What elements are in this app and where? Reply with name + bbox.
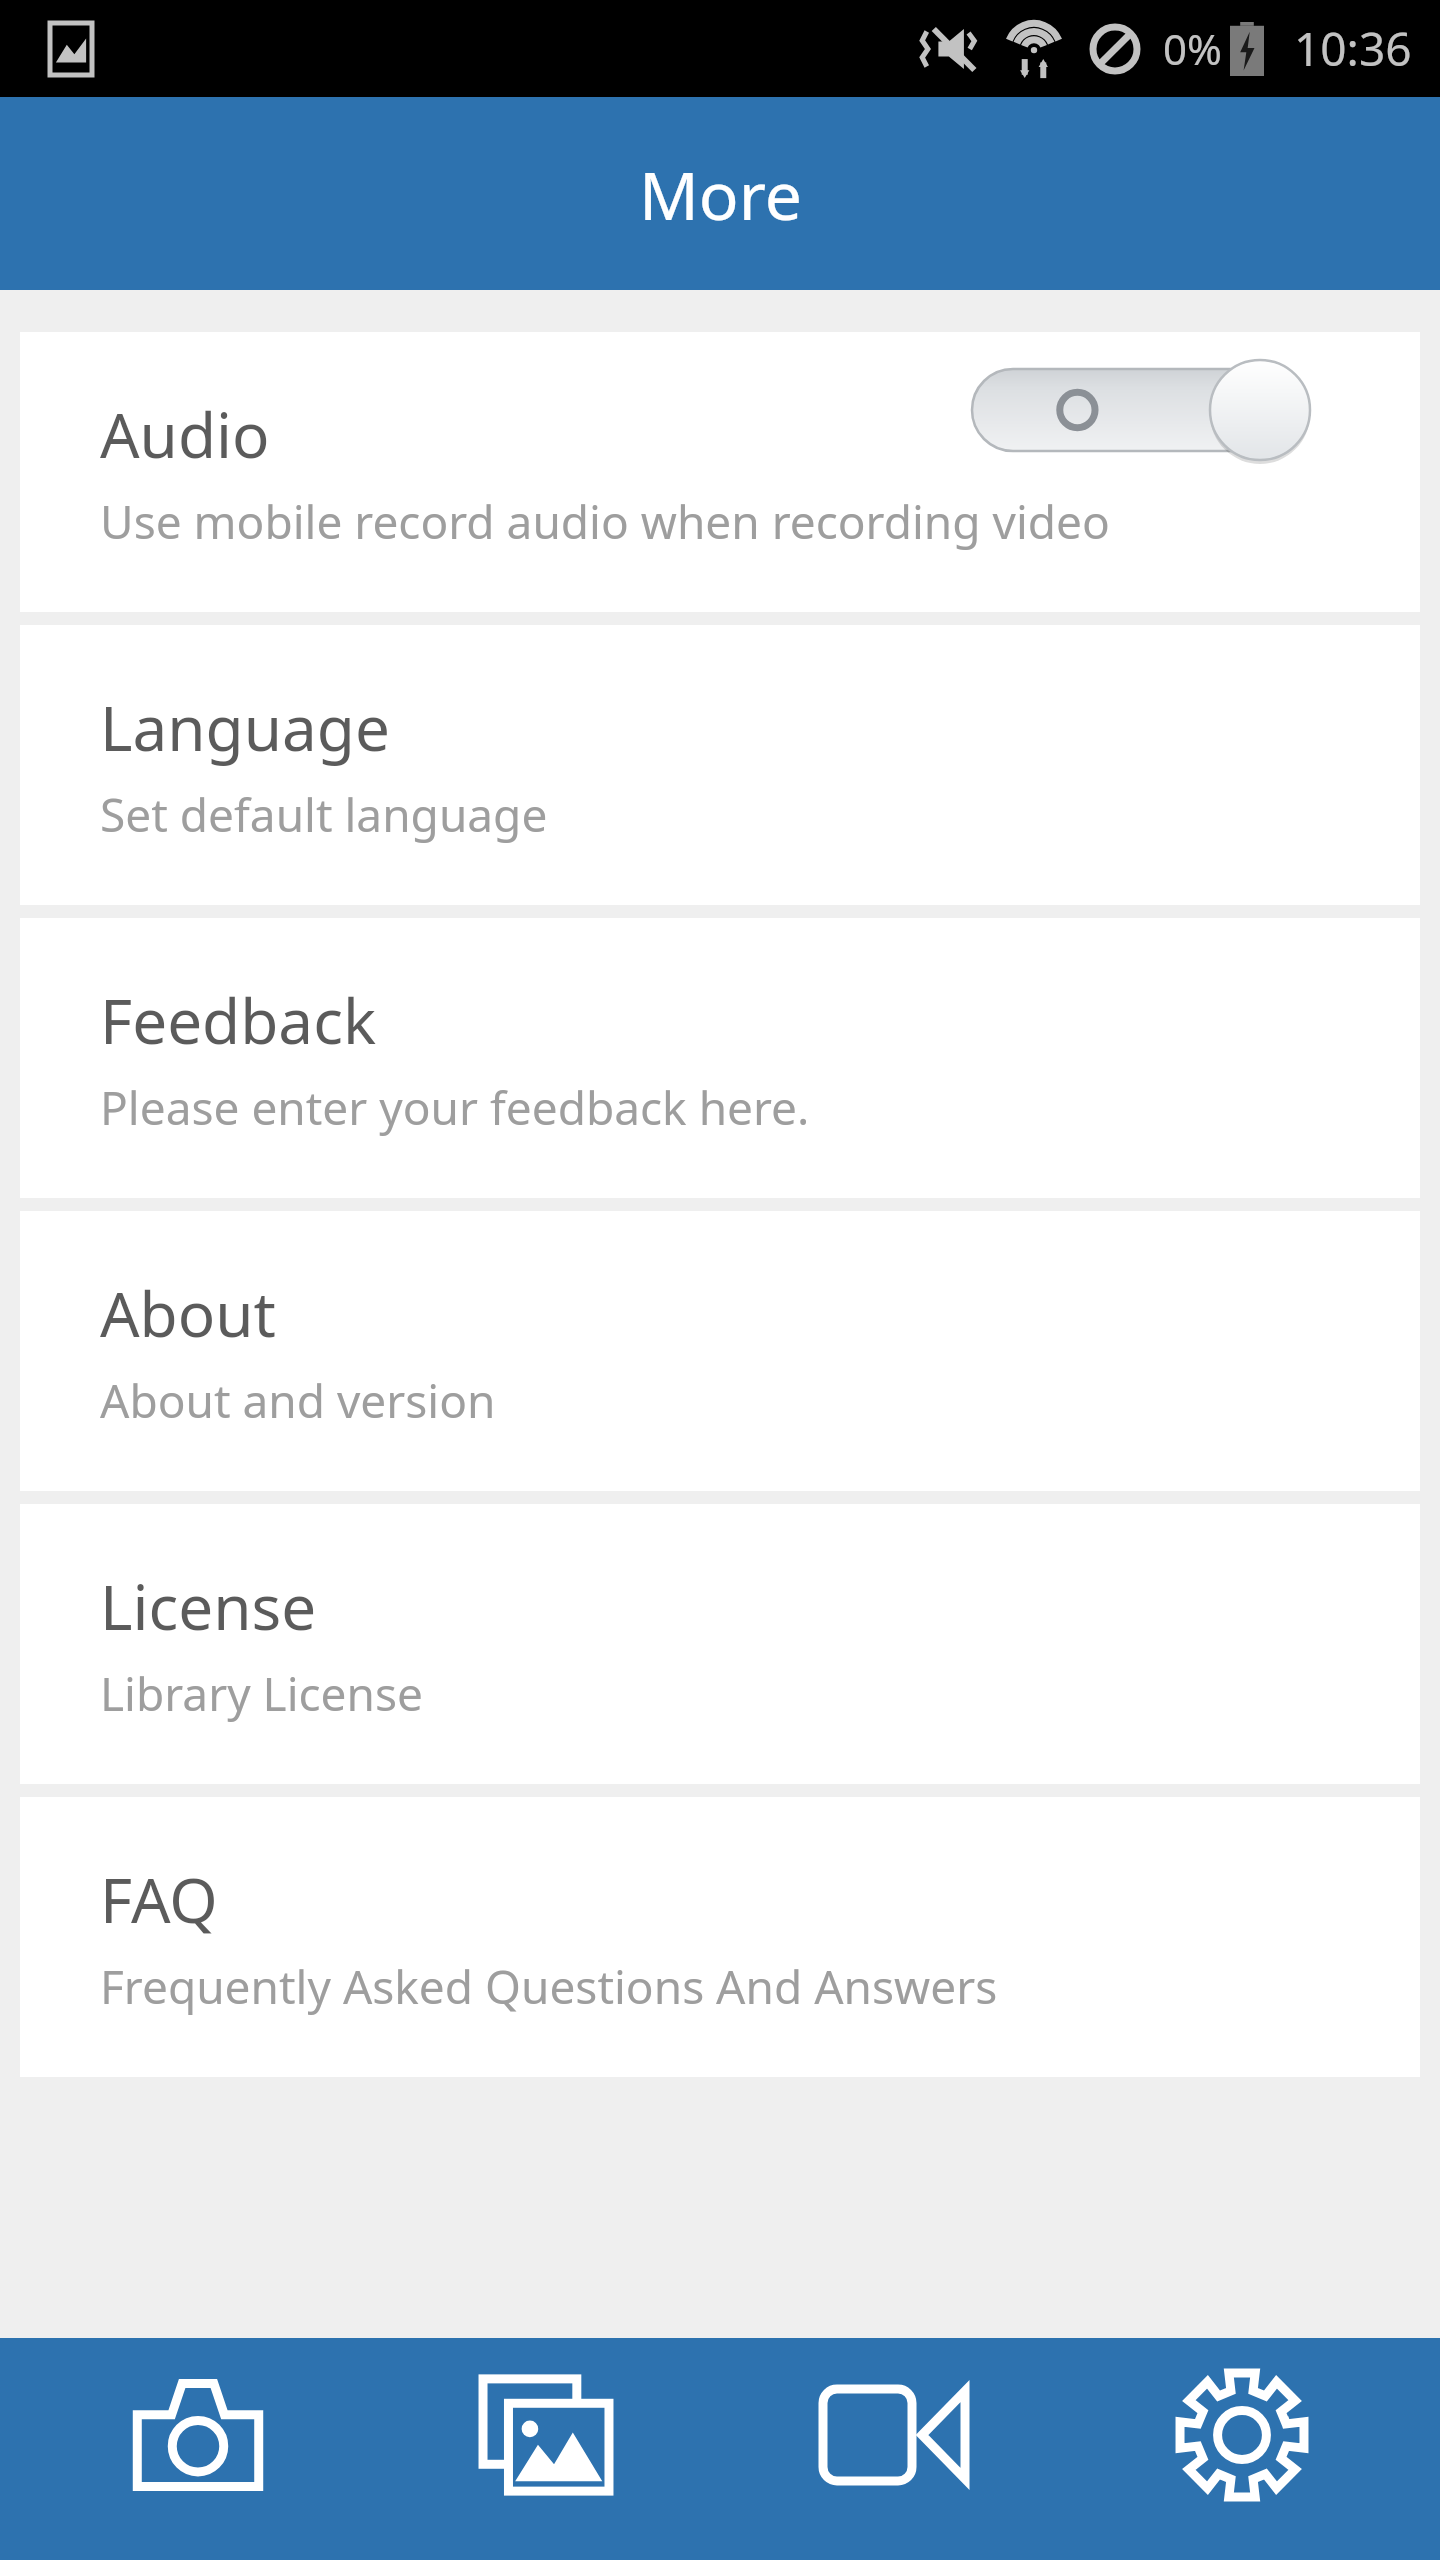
staticText: Use mobile record audio when recording v…: [100, 490, 1110, 553]
staticText: Feedback: [100, 978, 377, 1062]
staticText: 10:36: [1294, 17, 1412, 80]
staticText: Audio: [100, 392, 270, 476]
button[interactable]: FAQ: [20, 1797, 1420, 2077]
staticText: 0%: [1163, 20, 1222, 77]
staticText: Language: [100, 685, 390, 769]
button[interactable]: Audio toggle: [972, 360, 1312, 460]
button[interactable]: Feedback: [20, 918, 1420, 1198]
staticText: Library License: [100, 1662, 423, 1725]
button[interactable]: Language: [20, 625, 1420, 905]
staticText: Please enter your feedback here.: [100, 1076, 810, 1139]
button[interactable]: Settings: [1092, 2338, 1392, 2560]
staticText: License: [100, 1564, 317, 1648]
button[interactable]: About: [20, 1211, 1420, 1491]
staticText: Set default language: [100, 783, 548, 846]
button[interactable]: Gallery: [396, 2338, 696, 2560]
staticText: About and version: [100, 1369, 496, 1432]
staticText: Frequently Asked Questions And Answers: [100, 1955, 998, 2018]
button[interactable]: Camera: [48, 2338, 348, 2560]
button[interactable]: License: [20, 1504, 1420, 1784]
staticText: More: [639, 149, 802, 239]
button[interactable]: Video: [744, 2338, 1044, 2560]
staticText: About: [100, 1271, 276, 1355]
staticText: FAQ: [100, 1857, 218, 1941]
button[interactable]: Audio: [20, 332, 1420, 612]
